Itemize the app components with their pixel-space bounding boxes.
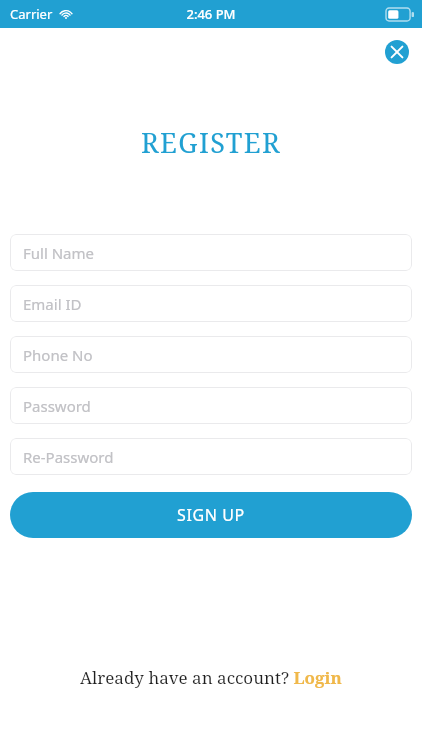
staticText: Phone No: [23, 345, 93, 365]
staticText: Re-Password: [23, 447, 114, 467]
button[interactable]: SIGN UP: [10, 492, 412, 538]
button[interactable]: Close: [385, 40, 409, 64]
button[interactable]: Full Name: [10, 234, 412, 271]
staticText: Password: [23, 396, 91, 416]
staticText: 2:46 PM: [186, 5, 236, 23]
button[interactable]: Re-Password: [10, 438, 412, 475]
staticText: REGISTER: [141, 124, 282, 161]
staticText: Full Name: [23, 243, 94, 263]
button[interactable]: Already have an account? Login: [80, 666, 342, 689]
staticText: Already have an account? Login: [80, 666, 342, 689]
button[interactable]: Email ID: [10, 285, 412, 322]
button[interactable]: Password: [10, 387, 412, 424]
staticText: Carrier: [10, 5, 53, 23]
staticText: SIGN UP: [177, 504, 245, 526]
staticText: Email ID: [23, 294, 82, 314]
button[interactable]: Phone No: [10, 336, 412, 373]
